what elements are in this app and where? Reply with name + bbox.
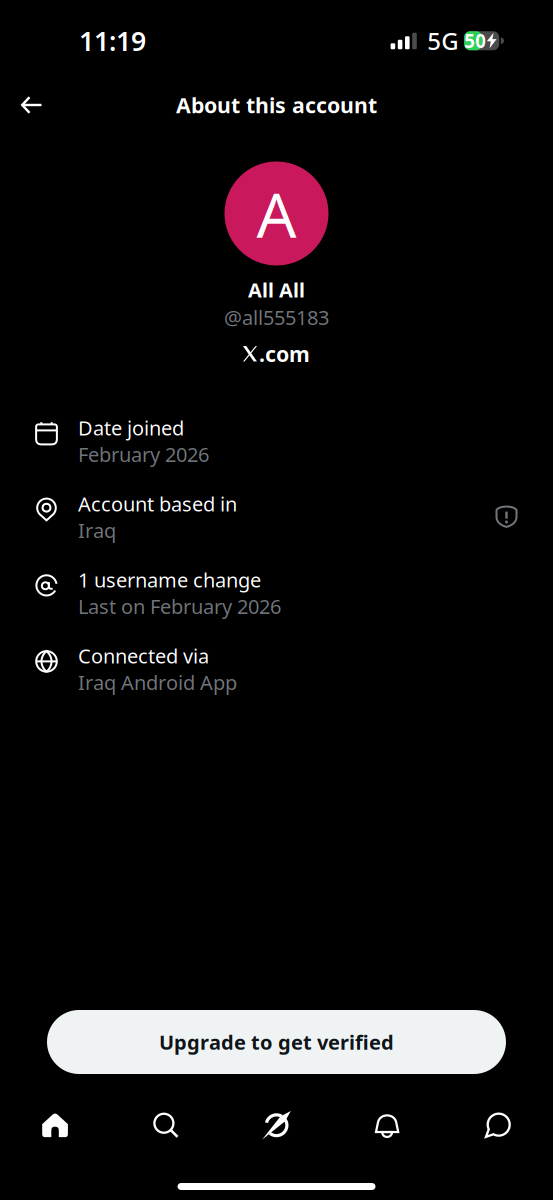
button[interactable]: Notifications	[332, 1092, 442, 1158]
staticText: 50	[464, 28, 486, 53]
staticText: Date joined	[78, 414, 184, 441]
button[interactable]: Search	[111, 1092, 221, 1158]
staticText: All All	[248, 276, 305, 303]
button[interactable]: Back	[0, 85, 62, 125]
staticText: 1 username change	[78, 566, 261, 593]
staticText: A	[256, 172, 296, 255]
staticText: @all555183	[224, 304, 329, 331]
staticText: About this account	[176, 91, 377, 119]
staticText: 11:19	[79, 23, 146, 58]
staticText: February 2026	[78, 441, 209, 467]
staticText: Iraq Android App	[78, 669, 237, 695]
staticText: Last on February 2026	[78, 593, 281, 619]
button[interactable]: Grok	[221, 1092, 332, 1158]
staticText: Iraq	[78, 517, 116, 543]
button[interactable]: Home	[0, 1092, 111, 1158]
button[interactable]: Upgrade to get verified	[47, 1010, 506, 1074]
button[interactable]: Messages	[442, 1092, 553, 1158]
staticText: Upgrade to get verified	[159, 1029, 394, 1055]
staticText: 5G	[427, 25, 458, 57]
staticText: .com	[259, 340, 310, 368]
staticText: Connected via	[78, 642, 209, 669]
staticText: Account based in	[78, 490, 237, 517]
